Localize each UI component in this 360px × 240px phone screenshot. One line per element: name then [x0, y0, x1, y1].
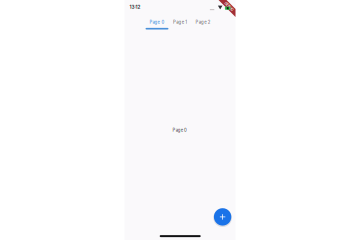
- button[interactable]: Add: [213, 206, 233, 227]
- staticText: 13:12: [129, 4, 140, 10]
- staticText: Page 0: [173, 128, 187, 133]
- staticText: Page 2: [195, 20, 211, 25]
- staticText: Page 1: [173, 20, 187, 25]
- button[interactable]: Page 0: [145, 16, 168, 29]
- staticText: DEBUG: [223, 5, 234, 8]
- button[interactable]: Page 2: [191, 16, 214, 29]
- button[interactable]: Page 1: [168, 16, 191, 29]
- staticText: Page 0: [149, 20, 164, 25]
